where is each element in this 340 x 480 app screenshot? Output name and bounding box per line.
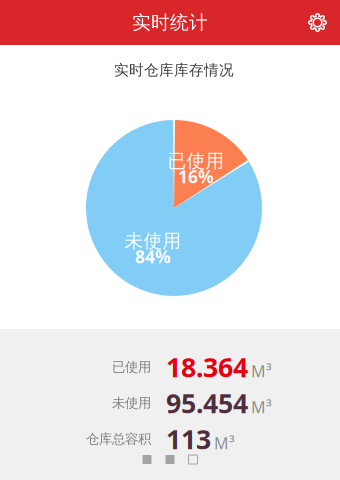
staticText: 84% — [135, 245, 171, 268]
staticText: 实时仓库库存情况 — [114, 61, 234, 79]
staticText: 已使用 — [112, 359, 151, 375]
staticText: 未使用 — [124, 229, 181, 252]
staticText: 113 — [166, 421, 211, 457]
button[interactable]: 设置 — [295, 0, 340, 45]
staticText: 仓库总容积 — [86, 431, 151, 447]
staticText: 16% — [178, 165, 214, 188]
staticText: M³ — [251, 396, 272, 418]
staticText: M³ — [251, 360, 272, 382]
staticText: 未使用 — [112, 395, 151, 411]
staticText: 95.454 — [166, 385, 248, 421]
staticText: 已使用 — [167, 149, 224, 172]
staticText: 18.364 — [166, 349, 248, 385]
staticText: M³ — [214, 432, 235, 454]
staticText: 实时统计 — [132, 11, 208, 34]
